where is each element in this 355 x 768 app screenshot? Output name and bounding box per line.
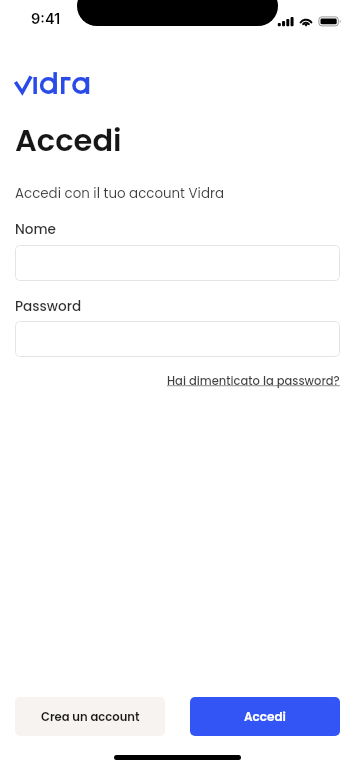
button[interactable] xyxy=(15,245,340,281)
staticText: Accedi xyxy=(15,119,122,162)
staticText: 9:41 xyxy=(31,10,61,28)
button[interactable]: Hai dimenticato la password? xyxy=(167,373,340,389)
staticText: Accedi xyxy=(244,708,286,725)
button[interactable]: Accedi xyxy=(190,697,340,736)
staticText: Nome xyxy=(15,220,56,239)
staticText: Hai dimenticato la password? xyxy=(167,373,340,389)
staticText: Password xyxy=(15,297,82,316)
button[interactable] xyxy=(15,321,340,357)
staticText: Crea un account xyxy=(41,709,140,725)
staticText: Accedi con il tuo account Vidra xyxy=(15,184,225,203)
button[interactable]: Crea un account xyxy=(15,697,165,736)
